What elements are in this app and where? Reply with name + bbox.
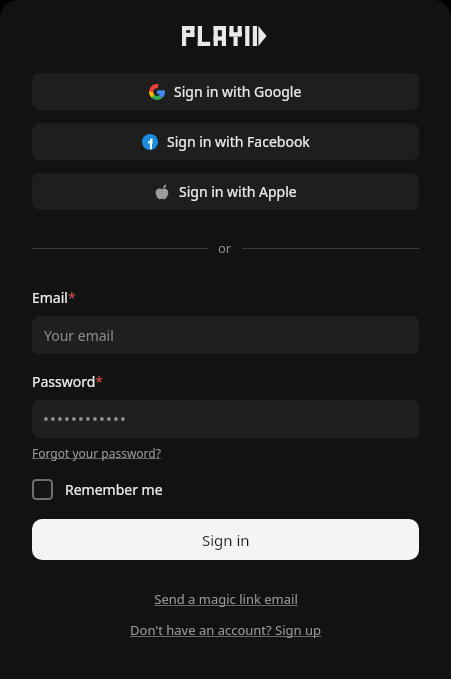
staticText: Forgot your password? xyxy=(32,445,161,461)
button[interactable]: Don't have an account? Sign up xyxy=(130,621,321,639)
staticText: Sign in xyxy=(202,530,250,550)
staticText: Your email xyxy=(44,326,114,345)
staticText: Sign in with Google xyxy=(174,82,302,101)
other: Facebook xyxy=(142,134,158,150)
staticText: Password* xyxy=(32,372,104,391)
button[interactable]: Google xyxy=(32,73,419,110)
staticText: Send a magic link email xyxy=(154,590,298,608)
staticText: or xyxy=(218,239,232,257)
button[interactable]: Remember me xyxy=(32,477,163,502)
button[interactable]: Your email xyxy=(32,316,419,354)
staticText: Sign in with Facebook xyxy=(167,132,310,151)
button[interactable]: Facebook xyxy=(32,123,419,160)
button[interactable] xyxy=(32,400,419,438)
other: Apple xyxy=(154,184,170,200)
staticText: Don't have an account? Sign up xyxy=(130,621,321,639)
button[interactable]: Sign in xyxy=(32,519,419,560)
button[interactable]: Send a magic link email xyxy=(154,590,298,608)
button[interactable]: Apple xyxy=(32,173,419,210)
staticText: Remember me xyxy=(65,480,163,499)
button[interactable]: Forgot your password? xyxy=(32,445,161,461)
staticText: Sign in with Apple xyxy=(179,182,297,201)
other: Google xyxy=(149,84,165,100)
staticText: Email* xyxy=(32,288,76,307)
